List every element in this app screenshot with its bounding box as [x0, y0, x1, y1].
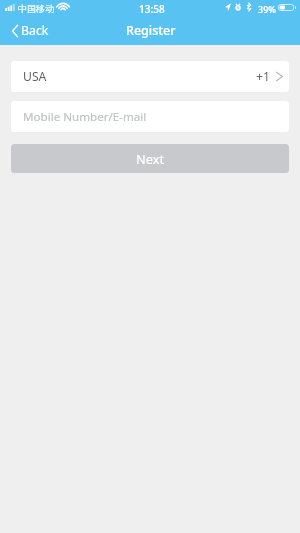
button[interactable]: Select country code: [11, 61, 289, 92]
staticText: +1: [256, 68, 270, 85]
staticText: USA: [23, 68, 47, 85]
button[interactable]: Next: [11, 144, 289, 173]
staticText: Mobile Number/E-mail: [23, 109, 147, 125]
staticText: 39%: [258, 3, 276, 15]
button[interactable]: Mobile Number/E-mail: [11, 101, 289, 132]
button[interactable]: Back: [0, 18, 59, 43]
staticText: 中国移动: [18, 3, 54, 14]
staticText: Next: [136, 150, 165, 167]
staticText: 13:58: [139, 2, 165, 16]
staticText: Back: [21, 22, 49, 39]
staticText: Register: [126, 22, 176, 39]
